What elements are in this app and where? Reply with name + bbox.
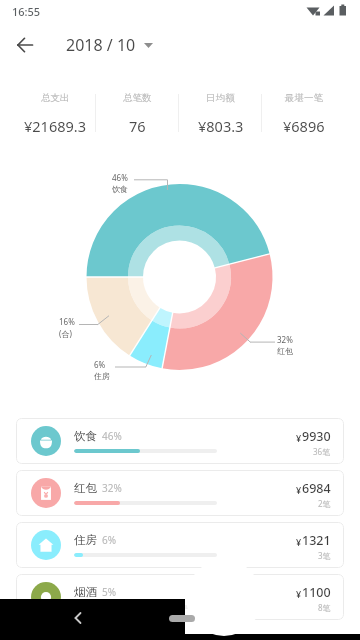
staticText: 饮食 — [112, 184, 128, 194]
staticText: ¥6896 — [283, 116, 325, 136]
staticText: 总支出 — [41, 92, 70, 104]
button[interactable]: 饮食 — [16, 418, 344, 464]
staticText: 76 — [129, 116, 146, 136]
staticText: 16% — [59, 316, 75, 327]
staticText: ¥21689.3 — [24, 116, 86, 136]
staticText: 6% — [102, 533, 117, 547]
staticText: 46% — [102, 429, 122, 443]
staticText: 46% — [112, 172, 128, 183]
staticText: 1321 — [302, 532, 331, 549]
button[interactable]: 烟酒 — [16, 574, 344, 620]
staticText: 6984 — [302, 480, 331, 497]
staticText: 16:55 — [12, 4, 41, 19]
button[interactable]: Back — [8, 28, 42, 62]
staticText: ¥803.3 — [198, 116, 244, 136]
staticText: 最堪一笔 — [285, 92, 323, 104]
button[interactable]: 住房 — [16, 522, 344, 568]
staticText: 饮食 — [74, 429, 97, 443]
staticText: 烟酒 — [74, 585, 97, 599]
staticText: 红包 — [74, 481, 97, 495]
staticText: 3笔 — [318, 550, 331, 561]
staticText: 9930 — [302, 428, 331, 445]
staticText: (合) — [59, 328, 72, 339]
staticText: 1100 — [302, 584, 331, 601]
staticText: 2笔 — [318, 498, 331, 509]
staticText: ¥ — [296, 484, 302, 496]
button[interactable]: Back — [64, 604, 92, 632]
staticText: 32% — [102, 481, 122, 495]
staticText: 5% — [102, 585, 117, 599]
staticText: 总笔数 — [123, 92, 152, 104]
staticText: ¥ — [296, 432, 302, 444]
button[interactable]: 红包 — [16, 470, 344, 516]
staticText: 日均额 — [206, 92, 235, 104]
staticText: 红包 — [277, 346, 293, 356]
staticText: 住房 — [74, 533, 97, 547]
staticText: 36笔 — [313, 446, 331, 457]
staticText: 32% — [277, 334, 293, 345]
staticText: 8笔 — [318, 602, 331, 613]
staticText: ¥ — [296, 588, 302, 600]
staticText: 住房 — [94, 371, 110, 381]
staticText: ¥ — [296, 536, 302, 548]
staticText: 2018 / 10 — [66, 34, 136, 56]
button[interactable]: 2018 / 10 — [66, 28, 153, 62]
staticText: 6% — [94, 359, 106, 370]
